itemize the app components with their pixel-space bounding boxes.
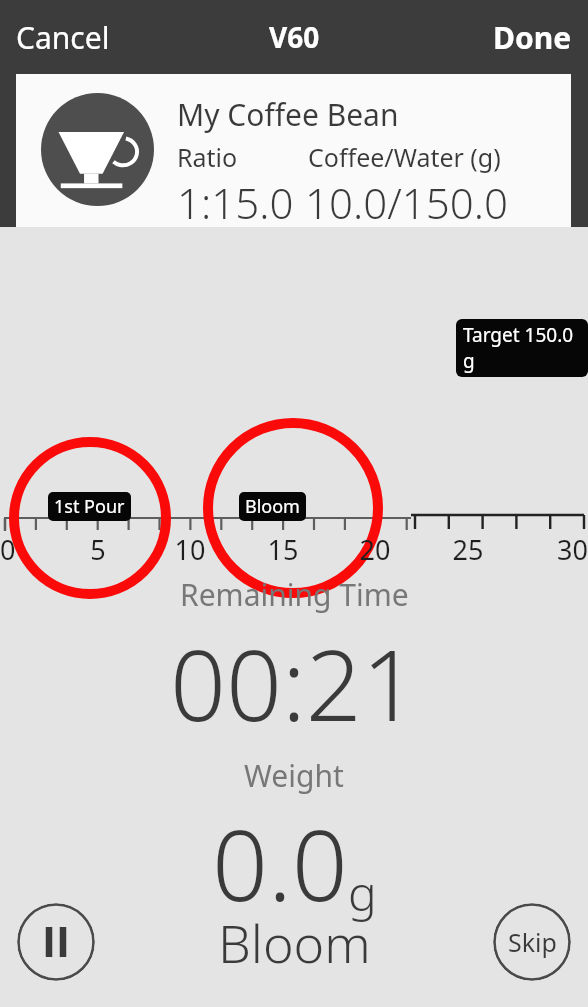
- staticText: Coffee/Water (g): [308, 140, 501, 174]
- staticText: Remaining Time: [180, 574, 409, 615]
- button[interactable]: Done: [481, 9, 584, 66]
- staticText: 10.0/150.0: [305, 174, 508, 227]
- staticText: My Coffee Bean: [177, 94, 399, 135]
- staticText: 30: [531, 531, 588, 568]
- staticText: 1:15.0: [177, 174, 305, 227]
- staticText: 15: [253, 531, 313, 568]
- staticText: 0: [0, 531, 60, 568]
- staticText: V60: [269, 18, 320, 56]
- staticText: 00:21: [170, 616, 418, 749]
- staticText: 5: [68, 531, 128, 568]
- staticText: 25: [438, 531, 498, 568]
- staticText: 20: [345, 531, 405, 568]
- staticText: Cancel: [16, 17, 110, 58]
- button[interactable]: Cancel: [4, 9, 122, 66]
- staticText: Ratio: [177, 140, 308, 174]
- button[interactable]: Pause: [17, 903, 95, 981]
- staticText: 1st Pour: [54, 494, 125, 519]
- staticText: g: [348, 860, 377, 925]
- staticText: Target 150.0 g: [463, 322, 581, 374]
- staticText: Done: [493, 17, 572, 58]
- staticText: 10: [160, 531, 220, 568]
- staticText: Weight: [244, 755, 344, 796]
- button[interactable]: My Coffee Bean: [16, 74, 571, 227]
- staticText: Bloom: [245, 494, 300, 519]
- staticText: Skip: [508, 925, 557, 959]
- staticText: 0.0: [212, 796, 348, 929]
- button[interactable]: Skip: [493, 903, 571, 981]
- staticText: Bloom: [218, 907, 371, 978]
